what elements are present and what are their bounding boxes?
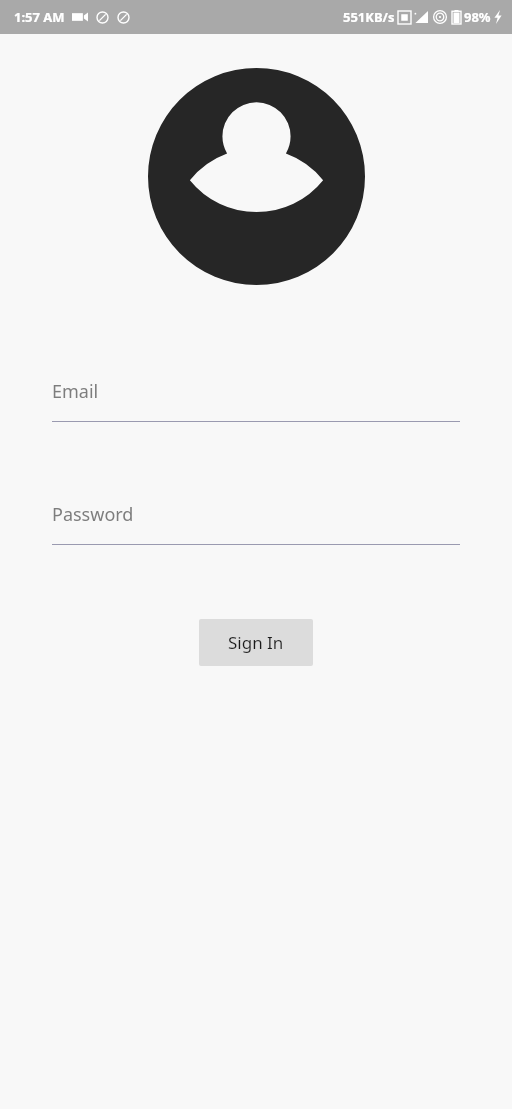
button[interactable]: Password [52, 502, 460, 545]
staticText: 1:57 AM [14, 8, 65, 26]
staticText: Email [52, 379, 99, 404]
button[interactable]: Sign In [199, 619, 313, 666]
staticText: Sign In [228, 631, 284, 654]
staticText: Password [52, 502, 134, 527]
staticText: 551KB/s [343, 8, 395, 26]
staticText: 98% [464, 8, 491, 26]
button[interactable]: Email [52, 379, 460, 422]
